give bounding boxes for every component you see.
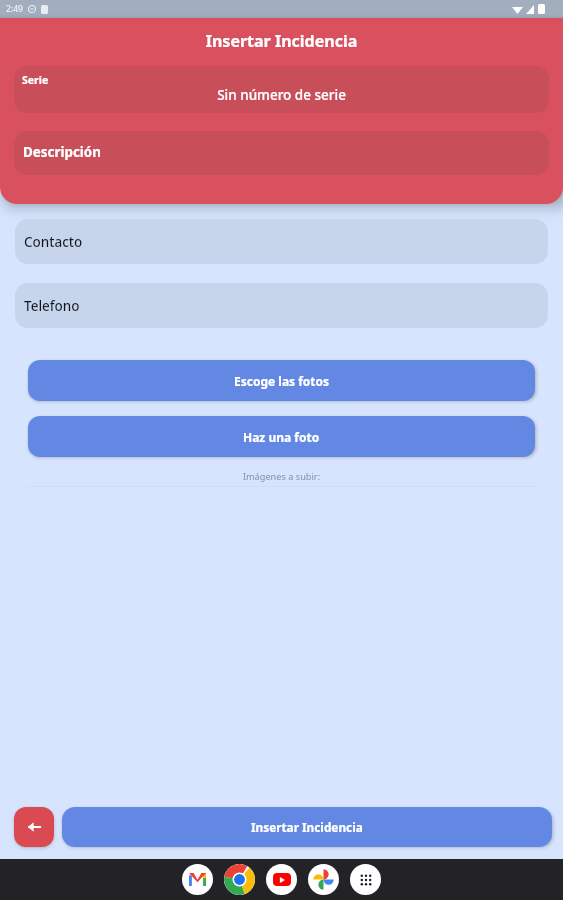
- staticText: Insertar Incidencia: [251, 819, 363, 835]
- staticText: Descripción: [23, 143, 101, 161]
- staticText: Sin número de serie: [14, 86, 549, 104]
- button[interactable]: All apps: [350, 864, 381, 895]
- button[interactable]: Chrome: [224, 864, 255, 895]
- button[interactable]: Insertar Incidencia: [62, 807, 552, 847]
- staticText: 2:49: [6, 3, 23, 15]
- button[interactable]: Photos: [308, 864, 339, 895]
- button[interactable]: Descripción: [14, 131, 549, 175]
- button[interactable]: Gmail: [182, 864, 213, 895]
- staticText: Haz una foto: [243, 429, 320, 445]
- button[interactable]: Telefono: [15, 283, 548, 328]
- button[interactable]: Back: [14, 807, 54, 847]
- staticText: Contacto: [24, 233, 83, 251]
- staticText: Escoge las fotos: [234, 373, 330, 389]
- button[interactable]: Haz una foto: [28, 416, 535, 457]
- staticText: Imágenes a subir:: [0, 470, 563, 483]
- button[interactable]: YouTube: [266, 864, 297, 895]
- button[interactable]: Contacto: [15, 219, 548, 264]
- staticText: Telefono: [24, 297, 80, 315]
- staticText: Serie: [22, 73, 49, 87]
- button[interactable]: Escoge las fotos: [28, 360, 535, 401]
- staticText: Insertar Incidencia: [0, 30, 563, 52]
- button[interactable]: Serie: [14, 66, 549, 113]
